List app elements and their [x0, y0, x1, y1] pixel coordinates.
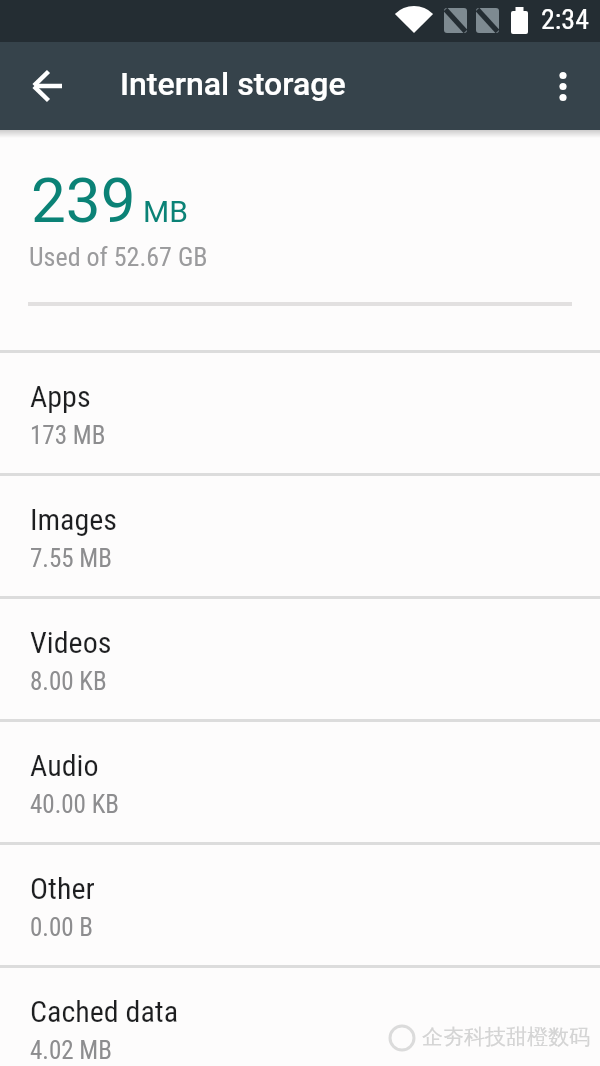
button[interactable]: Audio [0, 722, 600, 842]
staticText: 7.55 MB [30, 544, 112, 573]
staticText: 40.00 KB [30, 790, 119, 819]
staticText: Audio [30, 748, 99, 783]
staticText: Apps [30, 379, 91, 414]
staticText: Used of 52.67 GB [29, 242, 208, 272]
staticText: MB [143, 194, 188, 229]
button[interactable]: Apps [0, 353, 600, 473]
staticText: Images [30, 502, 117, 537]
staticText: 企夯科技甜橙数码 [422, 1024, 590, 1050]
button[interactable] [10, 62, 90, 110]
staticText: 8.00 KB [30, 667, 107, 696]
staticText: 173 MB [30, 421, 106, 450]
button[interactable]: Videos [0, 599, 600, 719]
staticText: 239 [31, 164, 136, 237]
staticText: 2:34 [541, 3, 590, 36]
staticText: Other [30, 871, 95, 906]
button[interactable]: Other [0, 845, 600, 965]
button[interactable]: Cached data [0, 968, 600, 1066]
staticText: 0.00 B [30, 913, 94, 942]
button[interactable]: Images [0, 476, 600, 596]
staticText: Internal storage [120, 65, 346, 103]
button[interactable] [536, 62, 590, 110]
staticText: Cached data [30, 994, 179, 1029]
staticText: 4.02 MB [30, 1036, 112, 1065]
staticText: Videos [30, 625, 112, 660]
